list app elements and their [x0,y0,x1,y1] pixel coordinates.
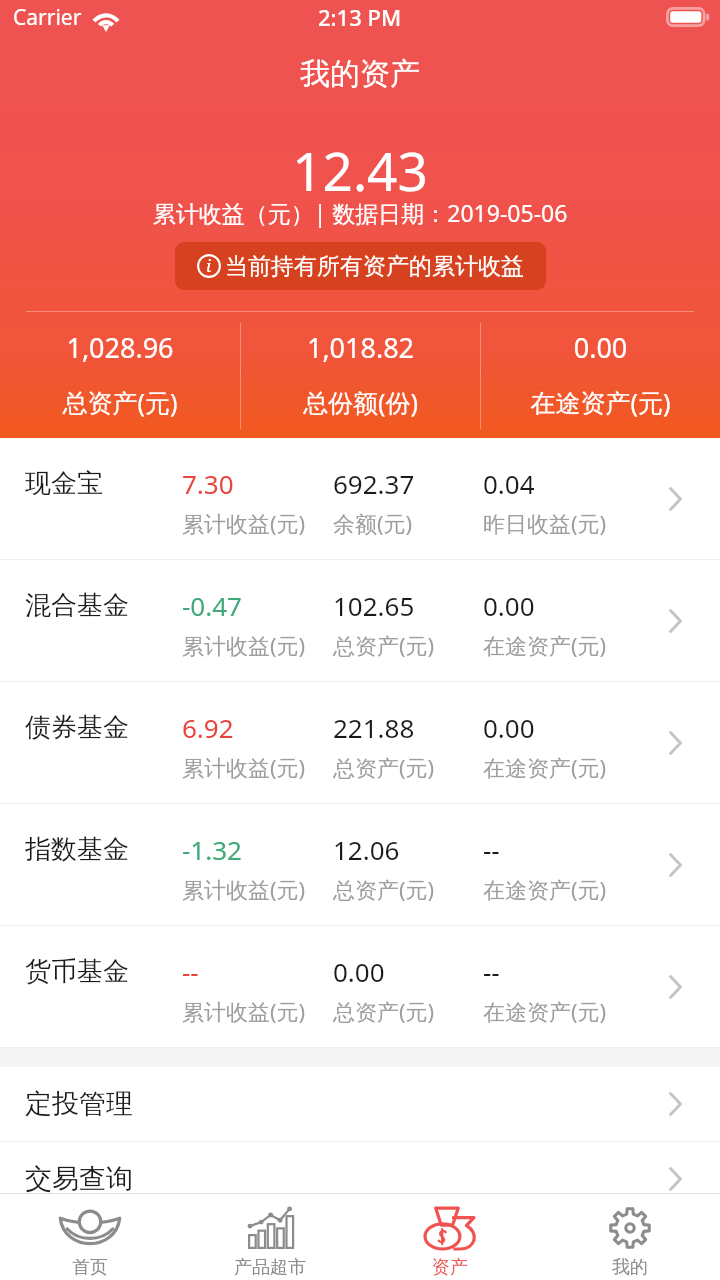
staticText: 总资产(元) [333,874,435,904]
staticText: -- [182,954,199,989]
staticText: 债券基金 [25,711,129,744]
button[interactable]: 指数基金 [0,804,720,925]
staticText: -- [483,954,500,989]
staticText: 现金宝 [25,467,103,500]
staticText: Carrier [13,3,82,32]
staticText: 在途资产(元) [483,874,607,904]
staticText: 混合基金 [25,589,129,622]
staticText: 2:13 PM [318,2,402,32]
button[interactable]: 1,018.82 [241,323,480,429]
staticText: 资产 [432,1256,468,1279]
staticText: 在途资产(元) [483,752,607,782]
staticText: 累计收益（元）| 数据日期：2019-05-06 [0,197,720,228]
button[interactable]: 定投管理 [0,1067,720,1141]
staticText: -- [483,832,500,867]
button[interactable]: 混合基金 [0,560,720,681]
staticText: 0.00 [483,588,535,623]
staticText: 我的资产 [0,55,720,93]
button[interactable]: 我的 [540,1194,720,1280]
button[interactable]: i [175,242,546,290]
staticText: 0.04 [483,466,535,501]
staticText: 7.30 [182,466,234,501]
button[interactable]: 交易查询 [0,1142,720,1216]
staticText: 总资产(元) [333,630,435,660]
button[interactable]: 0.00 [481,323,720,429]
staticText: 定投管理 [25,1087,133,1121]
staticText: 总资产(元) [0,385,240,419]
staticText: 累计收益(元) [182,874,306,904]
staticText: 1,028.96 [0,329,240,366]
staticText: 0.00 [333,954,385,989]
button[interactable]: 货币基金 [0,926,720,1047]
staticText: 12.43 [0,134,720,206]
button[interactable]: 产品超市 [180,1194,360,1280]
staticText: 当前持有所有资产的累计收益 [225,252,524,281]
staticText: 0.00 [481,329,720,366]
button[interactable]: 债券基金 [0,682,720,803]
staticText: 0.00 [483,710,535,745]
staticText: 102.65 [333,588,415,623]
staticText: 在途资产(元) [481,385,720,419]
staticText: 6.92 [182,710,234,745]
staticText: 货币基金 [25,955,129,988]
staticText: 在途资产(元) [483,996,607,1026]
button[interactable]: 现金宝 [0,438,720,559]
staticText: 交易查询 [25,1162,133,1196]
staticText: 221.88 [333,710,415,745]
staticText: 余额(元) [333,508,413,538]
staticText: 首页 [72,1256,108,1279]
staticText: 累计收益(元) [182,630,306,660]
staticText: -1.32 [182,832,242,867]
staticText: 1,018.82 [241,329,480,366]
staticText: 累计收益(元) [182,996,306,1026]
staticText: 总资产(元) [333,752,435,782]
staticText: 我的 [612,1256,648,1279]
button[interactable]: 资产 [360,1194,540,1280]
button[interactable]: 首页 [0,1194,180,1280]
staticText: 昨日收益(元) [483,508,607,538]
staticText: 12.06 [333,832,400,867]
staticText: i [206,254,212,277]
staticText: -0.47 [182,588,242,623]
staticText: 累计收益(元) [182,508,306,538]
staticText: 产品超市 [234,1256,306,1279]
staticText: 总资产(元) [333,996,435,1026]
staticText: 在途资产(元) [483,630,607,660]
staticText: 总份额(份) [241,385,480,419]
staticText: 指数基金 [25,833,129,866]
staticText: 692.37 [333,466,415,501]
button[interactable]: 1,028.96 [0,323,240,429]
staticText: 累计收益(元) [182,752,306,782]
